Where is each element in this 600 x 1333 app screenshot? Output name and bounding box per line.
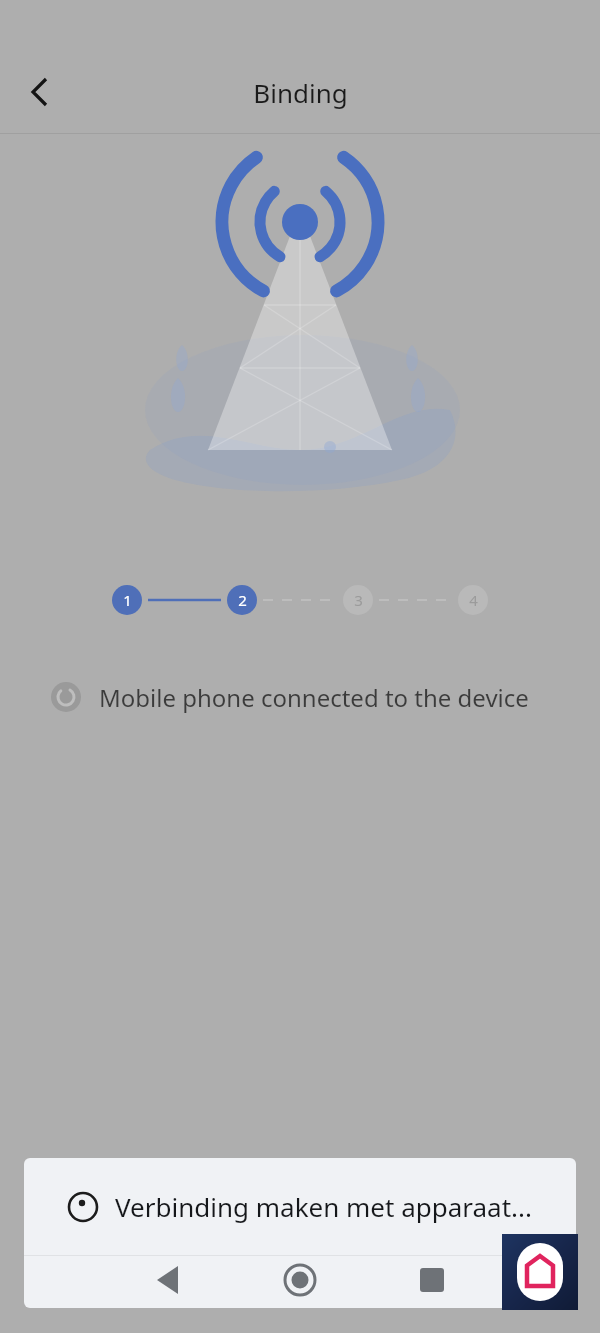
button[interactable]: 2 bbox=[227, 585, 257, 615]
button[interactable]: Verbinding maken met apparaat... bbox=[24, 1158, 576, 1255]
staticText: 3 bbox=[354, 590, 363, 610]
button[interactable]: Mobile phone connected to the device bbox=[0, 672, 600, 722]
staticText: Binding bbox=[253, 75, 348, 110]
button[interactable]: App icon bbox=[502, 1234, 578, 1310]
staticText: 2 bbox=[238, 590, 247, 610]
button[interactable]: Back bbox=[144, 1256, 192, 1304]
staticText: 1 bbox=[123, 590, 132, 610]
button[interactable]: 3 bbox=[343, 585, 373, 615]
button[interactable]: Back bbox=[14, 67, 64, 117]
staticText: Mobile phone connected to the device bbox=[99, 681, 529, 714]
button[interactable]: 4 bbox=[458, 585, 488, 615]
button[interactable]: Home bbox=[276, 1256, 324, 1304]
staticText: Verbinding maken met apparaat... bbox=[115, 1189, 532, 1224]
button[interactable]: Recent apps bbox=[408, 1256, 456, 1304]
staticText: 4 bbox=[469, 590, 478, 610]
button[interactable]: 1 bbox=[112, 585, 142, 615]
